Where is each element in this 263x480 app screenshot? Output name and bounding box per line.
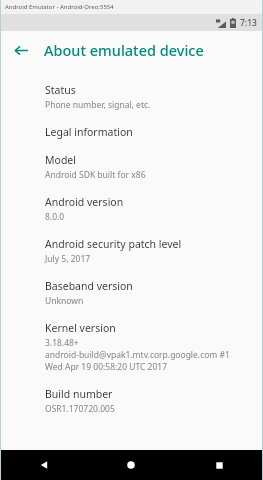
button[interactable]: Home xyxy=(87,450,175,480)
button[interactable]: Build number xyxy=(0,380,263,422)
button[interactable]: Android version xyxy=(0,188,263,230)
staticText: Status xyxy=(45,83,76,97)
staticText: Baseband version xyxy=(45,279,133,293)
button[interactable]: Back xyxy=(6,35,36,65)
staticText: Build number xyxy=(45,387,113,401)
staticText: Legal information xyxy=(45,125,133,139)
staticText: July 5, 2017 xyxy=(45,253,91,265)
button[interactable]: Baseband version xyxy=(0,272,263,314)
staticText: Phone number, signal, etc. xyxy=(45,99,151,111)
button[interactable]: Back xyxy=(0,450,87,480)
button[interactable]: Kernel version xyxy=(0,314,263,380)
staticText: Android security patch level xyxy=(45,237,182,251)
staticText: Android SDK built for x86 xyxy=(45,169,146,181)
button[interactable]: Android security patch level xyxy=(0,230,263,272)
staticText: 8.0.0 xyxy=(45,211,65,223)
staticText: android-build@vpak1.mtv.corp.google.com … xyxy=(45,349,230,361)
button[interactable]: Status xyxy=(0,76,263,118)
staticText: About emulated device xyxy=(44,40,204,60)
button[interactable]: Model xyxy=(0,146,263,188)
staticText: Android Emulator - Android-Oreo:5554 xyxy=(5,3,114,11)
staticText: 3.18.48+ xyxy=(45,337,79,349)
staticText: Model xyxy=(45,153,76,167)
staticText: Kernel version xyxy=(45,321,116,335)
staticText: Android version xyxy=(45,195,124,209)
staticText: OSR1.170720.005 xyxy=(45,403,115,415)
staticText: Unknown xyxy=(45,295,84,307)
staticText: 7:13 xyxy=(240,17,257,29)
button[interactable]: Recent apps xyxy=(175,450,263,480)
button[interactable]: Legal information xyxy=(0,118,263,146)
staticText: Wed Apr 19 00:58:20 UTC 2017 xyxy=(45,361,168,373)
